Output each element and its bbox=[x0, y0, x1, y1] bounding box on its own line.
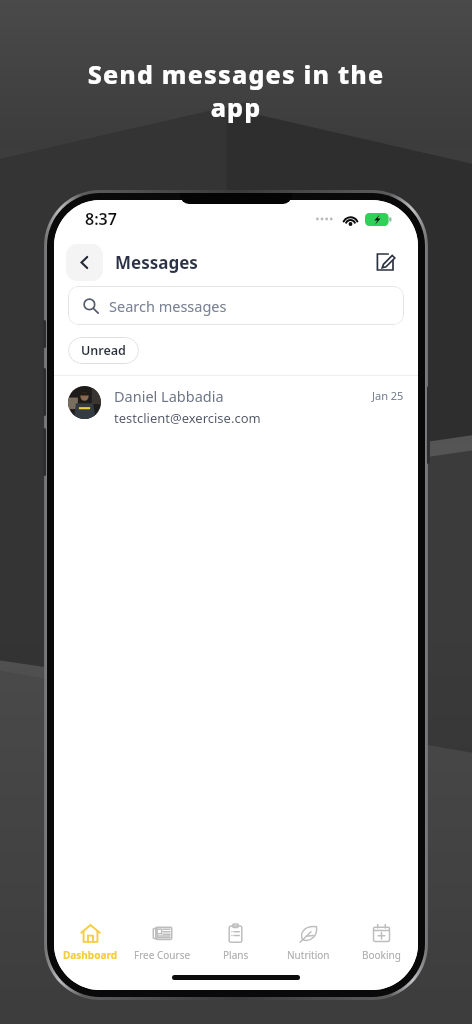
button[interactable]: Search messages bbox=[68, 286, 404, 325]
staticText: testclient@exercise.com bbox=[114, 409, 261, 427]
button[interactable]: Plans bbox=[199, 916, 272, 968]
staticText: 8:37 bbox=[85, 208, 117, 230]
button[interactable]: Compose message bbox=[368, 245, 402, 279]
button[interactable]: Back bbox=[66, 244, 103, 281]
staticText: Booking bbox=[362, 948, 401, 962]
staticText: Plans bbox=[223, 948, 249, 962]
button[interactable]: Free Course bbox=[126, 916, 199, 968]
staticText: Daniel Labbadia bbox=[114, 386, 224, 406]
staticText: Free Course bbox=[134, 948, 191, 962]
staticText: Dashboard bbox=[63, 948, 117, 962]
staticText: Send messages in the app bbox=[30, 57, 442, 124]
staticText: Unread bbox=[81, 342, 126, 359]
button[interactable]: Dashboard bbox=[54, 916, 126, 968]
staticText: Nutrition bbox=[287, 948, 330, 962]
button[interactable]: Daniel Labbadia bbox=[54, 376, 418, 437]
button[interactable]: Nutrition bbox=[272, 916, 345, 968]
button[interactable]: Booking bbox=[345, 916, 418, 968]
staticText: Jan 25 bbox=[372, 388, 404, 403]
staticText: Messages bbox=[115, 251, 198, 274]
button[interactable]: Unread bbox=[68, 337, 139, 364]
staticText: Search messages bbox=[109, 296, 227, 316]
